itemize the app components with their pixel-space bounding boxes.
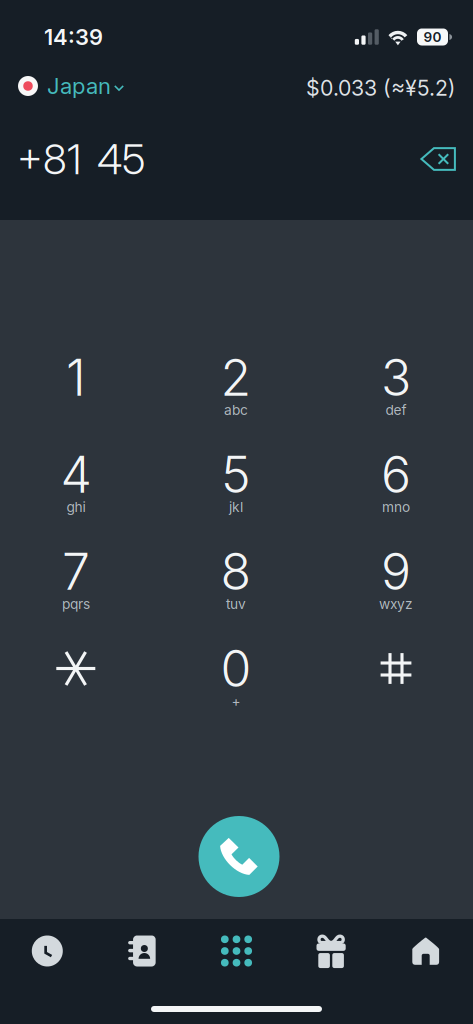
staticText: +81 45 [17,134,145,184]
button[interactable]: Delete [410,135,466,183]
staticText: 6 [381,444,411,505]
staticText: wxyz [379,596,413,612]
staticText: 9 [381,541,411,602]
button[interactable]: Rewards [284,935,378,967]
staticText: def [385,402,406,418]
staticText: Japan [47,73,111,99]
staticText: $0.033 (≈¥5.2) [306,75,456,101]
button[interactable]: 9 [316,542,473,639]
staticText: abc [224,402,248,418]
staticText: 4 [60,444,91,505]
staticText: pqrs [62,596,90,612]
button[interactable]: 7 [0,542,156,639]
staticText: 0 [220,638,251,699]
button[interactable]: Recents [0,935,95,966]
staticText: 90 [423,29,441,45]
button[interactable] [316,639,473,736]
staticText: 1 [66,347,86,408]
staticText: 8 [220,541,251,602]
staticText: 3 [381,347,411,408]
staticText: 2 [220,347,251,408]
button[interactable]: 8 [156,542,316,639]
button[interactable]: Call [198,816,279,897]
staticText: tuv [226,596,246,612]
button[interactable]: Contacts [95,935,189,966]
button[interactable]: Dial pad [189,935,284,966]
button[interactable]: 0 [156,639,316,736]
staticText: 14:39 [44,24,103,50]
button[interactable]: 6 [316,445,473,542]
staticText: + [231,693,240,709]
button[interactable]: 3 [316,348,473,445]
button[interactable]: 4 [0,445,156,542]
button[interactable]: 5 [156,445,316,542]
button[interactable]: Home [378,936,473,965]
staticText: jkl [229,499,243,515]
button[interactable]: 2 [156,348,316,445]
button[interactable] [0,639,156,736]
staticText: 5 [221,444,251,505]
button[interactable]: 1 [0,348,156,445]
staticText: ghi [66,499,85,515]
staticText: mno [382,499,410,515]
staticText: 7 [62,541,90,602]
button[interactable]: Japan [0,69,132,103]
